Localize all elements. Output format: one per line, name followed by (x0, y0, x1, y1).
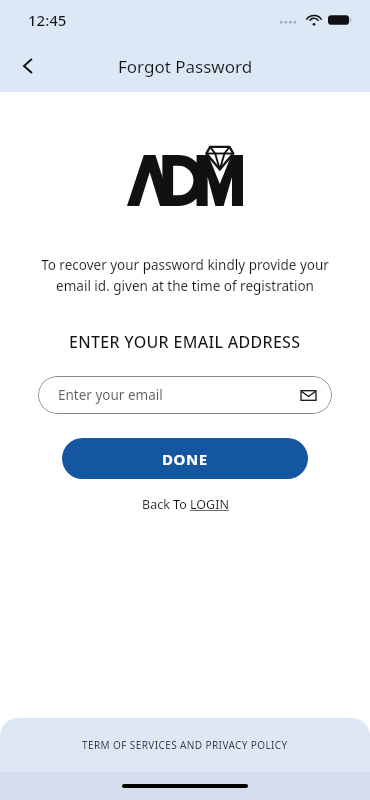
staticText: LOGIN (190, 496, 229, 513)
staticText: Forgot Password (118, 55, 253, 78)
staticText: Back To (142, 496, 190, 513)
button[interactable]: TERM OF SERVICES AND PRIVACY POLICY (0, 718, 370, 772)
button[interactable]: Enter your email (38, 376, 332, 414)
staticText: TERM OF SERVICES AND PRIVACY POLICY (82, 738, 288, 752)
button[interactable]: Back To (142, 496, 229, 513)
button[interactable]: DONE (62, 438, 308, 479)
staticText: DONE (162, 449, 208, 469)
staticText: 12:45 (28, 10, 67, 30)
staticText: ENTER YOUR EMAIL ADDRESS (69, 331, 301, 353)
staticText: To recover your password kindly provide … (20, 256, 350, 295)
button[interactable]: Back (6, 44, 50, 88)
staticText: Enter your email (58, 386, 301, 404)
